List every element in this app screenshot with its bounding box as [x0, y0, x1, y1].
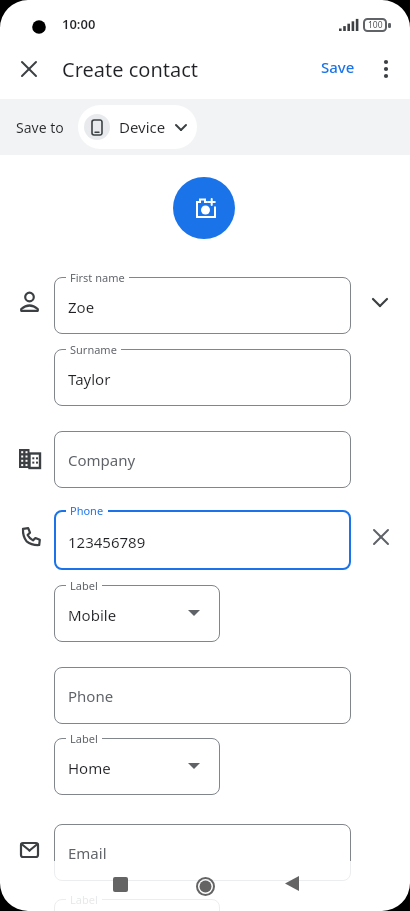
button[interactable] [173, 177, 235, 239]
staticText: Email [68, 843, 107, 863]
button[interactable]: Email [54, 824, 351, 881]
staticText: Surname [70, 342, 117, 357]
button[interactable]: Save [321, 57, 355, 77]
staticText: Company [68, 450, 136, 470]
staticText: Mobile [68, 605, 117, 625]
button[interactable]: Phone [54, 667, 351, 724]
staticText: Create contact [62, 56, 199, 83]
button[interactable] [372, 54, 400, 84]
staticText: Label [70, 578, 98, 593]
button[interactable]: Company [54, 431, 351, 488]
button[interactable] [190, 871, 220, 901]
button[interactable] [367, 523, 395, 551]
button[interactable]: Zoe [54, 277, 351, 334]
button[interactable] [54, 899, 220, 911]
staticText: Save to [16, 118, 64, 137]
staticText: Phone [70, 503, 104, 518]
button[interactable]: Home [54, 738, 220, 795]
button[interactable] [277, 868, 307, 898]
staticText: Taylor [68, 369, 111, 389]
button[interactable]: 123456789 [54, 510, 351, 570]
button[interactable] [366, 288, 394, 316]
staticText: 10:00 [62, 15, 96, 33]
staticText: 123456789 [68, 532, 146, 552]
button[interactable]: Mobile [54, 585, 220, 642]
button[interactable]: Device [78, 105, 197, 149]
button[interactable]: Taylor [54, 349, 351, 406]
button[interactable] [14, 54, 44, 84]
staticText: 100 [368, 19, 383, 31]
staticText: Zoe [68, 297, 95, 317]
staticText: Label [70, 731, 98, 746]
staticText: Save [321, 57, 355, 77]
staticText: Phone [68, 686, 114, 706]
button[interactable] [105, 869, 135, 899]
staticText: Device [119, 117, 166, 137]
staticText: Home [68, 758, 111, 778]
staticText: First name [70, 270, 125, 285]
staticText: Label [70, 892, 98, 907]
